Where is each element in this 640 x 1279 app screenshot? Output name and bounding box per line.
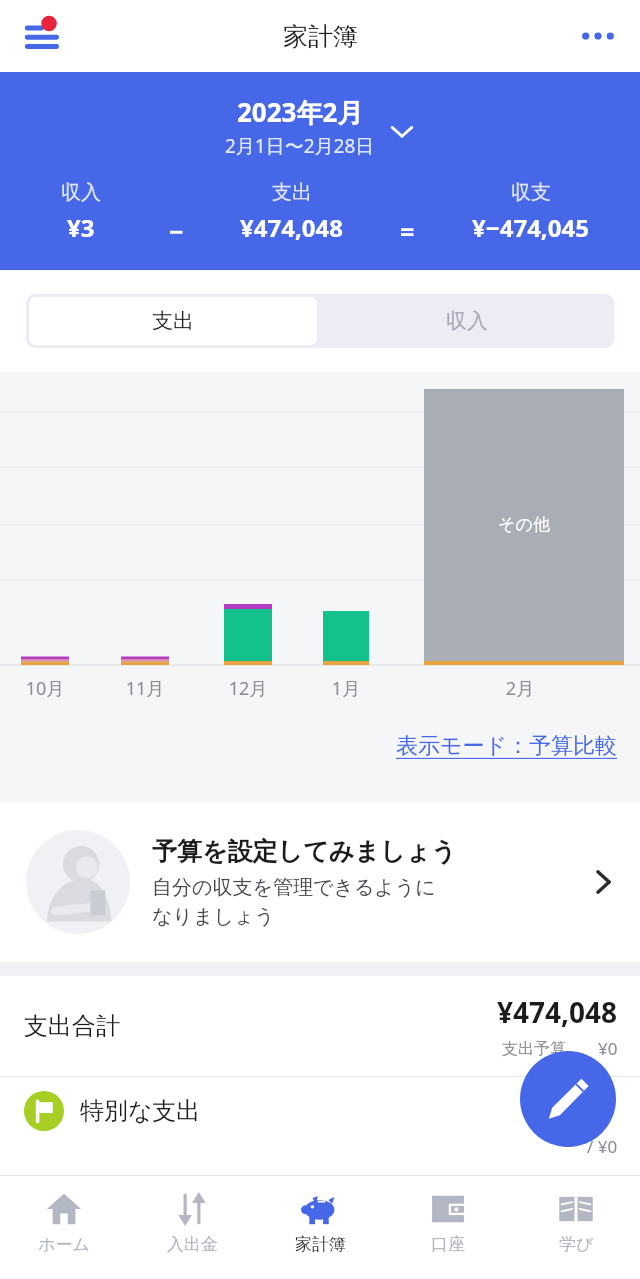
button[interactable]: メニュー [14, 6, 74, 66]
staticText: = [400, 214, 415, 248]
staticText: ホーム [38, 1234, 90, 1255]
staticText: その他 [476, 514, 572, 535]
staticText: 2月 [485, 676, 555, 701]
staticText: 収支 [511, 180, 551, 205]
button[interactable]: 入出金 [128, 1176, 256, 1279]
staticText: 支出予算 [502, 1039, 566, 1059]
staticText: 支出 [152, 308, 194, 334]
staticText: ¥0 [598, 1037, 618, 1060]
staticText: 表示モード：予算比較 [396, 732, 618, 760]
button[interactable]: 学び [512, 1176, 640, 1279]
staticText: 入出金 [167, 1234, 218, 1255]
staticText: 家計簿 [295, 1234, 346, 1255]
staticText: 自分の収支を管理できるように [152, 875, 436, 900]
staticText: 1月 [311, 676, 381, 701]
staticText: / ¥0 [587, 1135, 618, 1158]
button[interactable]: ホーム [0, 1176, 128, 1279]
button[interactable]: 支出 [29, 297, 317, 345]
staticText: 支出合計 [24, 1011, 120, 1041]
staticText: 12月 [213, 676, 283, 701]
staticText: なりましょう [152, 904, 275, 929]
staticText: ¥3 [67, 211, 95, 244]
button[interactable]: 表示モード：予算比較 [396, 732, 618, 760]
button[interactable]: 家計簿 [256, 1176, 384, 1279]
staticText: − [169, 214, 184, 248]
staticText: 10月 [10, 676, 80, 701]
staticText: ¥474,048 [240, 211, 343, 244]
button[interactable]: 予算を設定してみましょう [0, 802, 640, 962]
button[interactable]: 収入 [320, 294, 614, 348]
staticText: 口座 [431, 1234, 465, 1255]
staticText: 収入 [61, 180, 101, 205]
staticText: 2月1日〜2月28日 [225, 133, 375, 159]
staticText: 収入 [446, 308, 488, 334]
staticText: ¥−474,045 [472, 211, 589, 244]
button[interactable]: 支出合計 [0, 976, 640, 1076]
button[interactable]: 特別な支出 [0, 1077, 640, 1176]
staticText: 特別な支出 [80, 1096, 201, 1126]
staticText: 家計簿 [283, 21, 358, 52]
staticText: ¥474,048 [497, 993, 618, 1031]
staticText: 予算を設定してみましょう [152, 836, 457, 867]
staticText: 11月 [110, 676, 180, 701]
button[interactable]: 口座 [384, 1176, 512, 1279]
staticText: 学び [559, 1234, 594, 1255]
staticText: 支出 [272, 180, 312, 205]
button[interactable]: その他メニュー [568, 6, 628, 66]
button[interactable]: 入力する [520, 1051, 616, 1147]
staticText: 2023年2月 [237, 94, 364, 130]
button[interactable]: 2023年2月 [225, 94, 415, 159]
